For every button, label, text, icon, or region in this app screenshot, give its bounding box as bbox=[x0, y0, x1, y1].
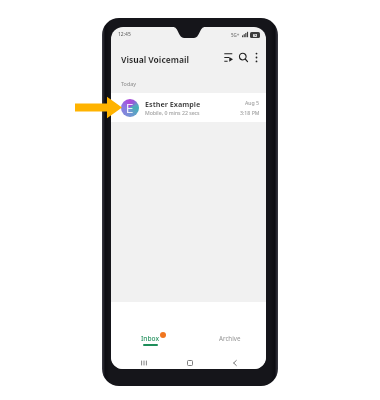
button[interactable]: Home bbox=[183, 356, 196, 369]
staticText: 12:45 bbox=[118, 31, 131, 38]
button[interactable]: More options bbox=[247, 45, 265, 69]
staticText: 5G+ bbox=[231, 32, 240, 38]
staticText: 3:18 PM bbox=[240, 109, 260, 116]
staticText: 62 bbox=[253, 33, 258, 38]
staticText: Archive bbox=[219, 334, 241, 342]
staticText: Esther Example bbox=[145, 99, 201, 109]
staticText: Mobile, 0 mins 22 secs bbox=[145, 109, 200, 116]
staticText: Aug 5 bbox=[245, 99, 260, 106]
button[interactable]: Search bbox=[234, 45, 252, 69]
staticText: E bbox=[126, 99, 134, 117]
staticText: Today bbox=[121, 80, 136, 87]
button[interactable]: E bbox=[111, 93, 266, 122]
button[interactable]: Inbox bbox=[130, 334, 170, 352]
button[interactable]: Sort bbox=[219, 45, 237, 69]
button[interactable]: Back bbox=[228, 356, 241, 369]
staticText: Inbox bbox=[141, 334, 160, 343]
staticText: Visual Voicemail bbox=[121, 54, 189, 65]
button[interactable]: Archive bbox=[210, 334, 250, 350]
button[interactable]: Recents bbox=[137, 356, 150, 369]
